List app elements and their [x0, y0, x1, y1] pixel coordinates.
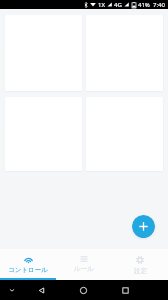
button[interactable]: Recents: [118, 283, 133, 298]
button[interactable]: Back: [34, 283, 49, 298]
staticText: 41%: [138, 1, 150, 9]
staticText: 設定: [134, 267, 147, 275]
staticText: コントロール: [8, 266, 48, 274]
button[interactable]: Home: [76, 283, 91, 298]
staticText: ルール: [74, 265, 94, 273]
staticText: 4G: [114, 1, 122, 9]
staticText: 1X: [98, 1, 105, 9]
button[interactable]: 設定: [112, 249, 168, 278]
button[interactable]: ルール: [56, 249, 112, 278]
staticText: 7:40: [153, 1, 165, 9]
button[interactable]: Add: [132, 215, 155, 238]
button[interactable]: コントロール: [0, 249, 56, 278]
